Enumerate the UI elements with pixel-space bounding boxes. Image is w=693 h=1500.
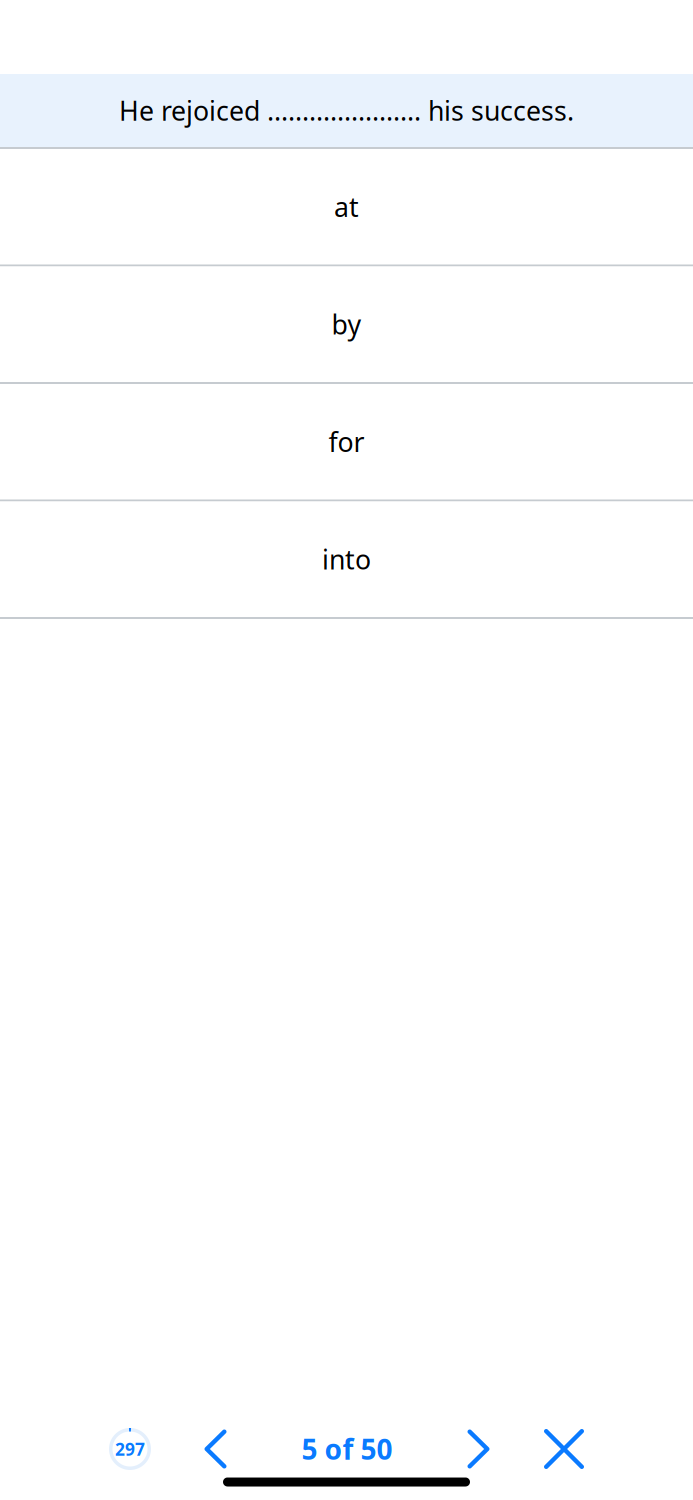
button[interactable]: 5 of 50 [301,1430,392,1468]
staticText: for [328,424,364,459]
button[interactable]: Previous question [204,1429,226,1468]
staticText: 5 of 50 [301,1430,392,1468]
button[interactable]: Next question [467,1429,489,1468]
staticText: into [322,541,371,577]
staticText: by [331,306,361,342]
button[interactable]: into [0,501,693,617]
button[interactable]: for [0,384,693,499]
staticText: He rejoiced ...................... his s… [119,93,574,128]
staticText: at [334,189,359,224]
button[interactable]: Close quiz [544,1429,584,1469]
button[interactable]: at [0,149,693,264]
button[interactable]: by [0,266,693,382]
button[interactable]: Time remaining [109,1428,151,1470]
staticText: 297 [115,1437,145,1460]
